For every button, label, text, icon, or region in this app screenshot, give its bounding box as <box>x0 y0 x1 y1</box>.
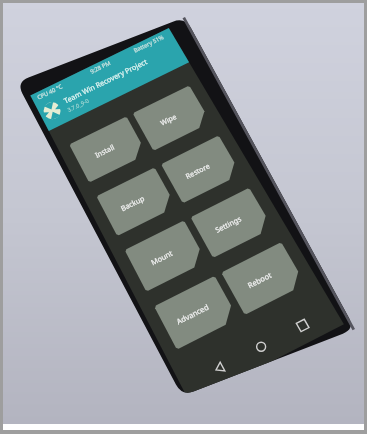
button[interactable]: Photo of a phone running TWRP recovery <box>0 0 367 434</box>
